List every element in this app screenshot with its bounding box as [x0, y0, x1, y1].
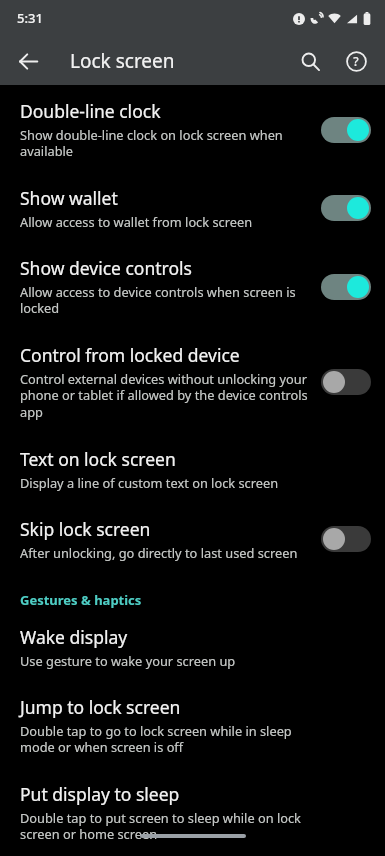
- staticText: ?: [353, 53, 359, 69]
- staticText: Display a line of custom text on lock sc…: [20, 474, 279, 491]
- staticText: Skip lock screen: [20, 517, 151, 541]
- staticText: Show double-line clock on lock screen wh…: [20, 126, 311, 160]
- button[interactable]: Put display to sleep: [0, 770, 385, 856]
- button[interactable]: Skip lock screen: [0, 505, 385, 577]
- button[interactable]: Wake display: [0, 615, 385, 683]
- button[interactable]: On: [321, 117, 371, 143]
- button[interactable]: Search: [287, 38, 333, 84]
- button[interactable]: Show wallet: [0, 174, 385, 244]
- staticText: Double tap to go to lock screen while in…: [20, 722, 311, 756]
- button[interactable]: Off: [321, 369, 371, 395]
- staticText: Show device controls: [20, 256, 192, 280]
- staticText: Control external devices without unlocki…: [20, 370, 311, 421]
- button[interactable]: Back: [6, 39, 50, 83]
- staticText: Control from locked device: [20, 343, 240, 367]
- button[interactable]: Jump to lock screen: [0, 683, 385, 770]
- staticText: Lock screen: [70, 48, 175, 74]
- staticText: Allow access to wallet from lock screen: [20, 213, 253, 230]
- staticText: Double tap to put screen to sleep while …: [20, 809, 311, 842]
- staticText: Double-line clock: [20, 99, 161, 123]
- button[interactable]: On: [321, 195, 371, 221]
- staticText: Wake display: [20, 625, 128, 649]
- button[interactable]: Text on lock screen: [0, 435, 385, 505]
- button[interactable]: Help: [333, 38, 379, 84]
- staticText: Use gesture to wake your screen up: [20, 652, 236, 669]
- staticText: Allow access to device controls when scr…: [20, 283, 311, 317]
- staticText: Show wallet: [20, 186, 118, 210]
- button[interactable]: Double-line clock: [0, 85, 385, 174]
- button[interactable]: Control from locked device: [0, 331, 385, 435]
- button[interactable]: On: [321, 274, 371, 300]
- staticText: Gestures & haptics: [20, 591, 142, 609]
- staticText: 5:31: [17, 9, 43, 27]
- button[interactable]: Show device controls: [0, 244, 385, 331]
- staticText: Jump to lock screen: [20, 695, 181, 719]
- staticText: Text on lock screen: [20, 447, 176, 471]
- staticText: Put display to sleep: [20, 782, 180, 806]
- button[interactable]: Off: [321, 526, 371, 552]
- staticText: After unlocking, go directly to last use…: [20, 544, 298, 561]
